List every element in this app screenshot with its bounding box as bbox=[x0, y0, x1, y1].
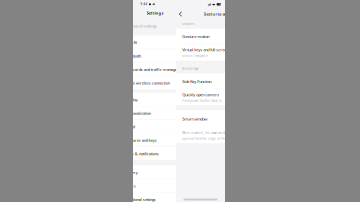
button[interactable]: Gesture motion bbox=[176, 29, 225, 44]
staticText: SIM cards and traffic manage bbox=[125, 67, 177, 72]
button[interactable]: Side Key Function bbox=[176, 74, 225, 89]
button[interactable]: Battery bbox=[118, 166, 210, 179]
button[interactable]: Display bbox=[118, 93, 210, 106]
staticText: When enabled, the smart window bbox=[182, 131, 229, 135]
staticText: Quickly open camera bbox=[182, 92, 219, 97]
staticText: Gestures and keys bbox=[203, 11, 239, 17]
staticText: WLAN bbox=[125, 40, 137, 45]
button[interactable]: SIM cards and traffic manage bbox=[118, 63, 210, 76]
button[interactable]: Personalization bbox=[118, 106, 210, 120]
button[interactable]: Virtual keys and full screen bbox=[176, 44, 225, 61]
button[interactable]: Bluetooth bbox=[118, 49, 210, 63]
button[interactable]: Back bbox=[176, 8, 185, 20]
staticText: Settings bbox=[146, 10, 163, 16]
staticText: Shortcut keys bbox=[182, 67, 198, 70]
button[interactable]: Smart window bbox=[176, 110, 225, 143]
staticText: opened from the edge of the bbox=[182, 137, 226, 141]
button[interactable]: More wireless connection bbox=[118, 76, 210, 90]
button[interactable]: Gestures and keys bbox=[118, 133, 210, 147]
staticText: Search settings bbox=[131, 23, 157, 29]
staticText: Side Key Function bbox=[182, 79, 211, 84]
staticText: Smart window bbox=[182, 116, 207, 121]
staticText: Bluetooth bbox=[125, 53, 141, 59]
staticText: Personalization bbox=[125, 110, 151, 116]
staticText: Gestures bbox=[182, 22, 194, 26]
button[interactable]: Quickly open camera bbox=[176, 89, 225, 105]
staticText: Apps & notifications bbox=[125, 151, 159, 156]
staticText: Display bbox=[125, 97, 138, 102]
staticText: Press power button twice to bbox=[182, 99, 222, 102]
staticText: Virtual keys and full screen bbox=[182, 47, 228, 52]
staticText: 9:44 bbox=[141, 2, 148, 6]
button[interactable]: WLAN bbox=[118, 36, 210, 49]
button[interactable]: Apps & notifications bbox=[118, 147, 210, 160]
staticText: Additional settings bbox=[125, 197, 156, 202]
button[interactable]: Sound bbox=[118, 120, 210, 133]
staticText: Gesture navigation bbox=[182, 54, 208, 57]
staticText: Battery bbox=[125, 170, 138, 175]
button[interactable]: Users bbox=[118, 179, 210, 193]
staticText: Users bbox=[125, 183, 136, 188]
staticText: Sound bbox=[125, 124, 135, 129]
staticText: Gestures and keys bbox=[125, 137, 157, 143]
staticText: Gesture motion bbox=[182, 34, 209, 39]
staticText: More wireless connection bbox=[125, 80, 170, 86]
button[interactable]: Additional settings bbox=[118, 193, 210, 202]
